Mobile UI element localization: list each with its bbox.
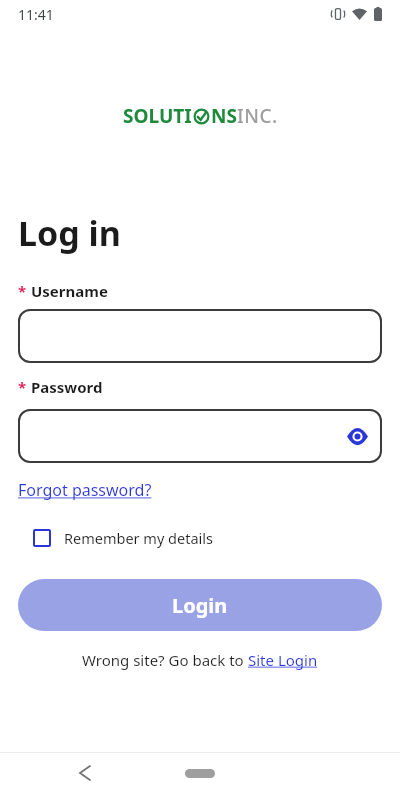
staticText: Username xyxy=(31,281,108,301)
staticText: INC. xyxy=(237,103,278,129)
staticText: Login xyxy=(172,592,228,619)
staticText: SOLUTI xyxy=(123,103,192,129)
staticText: NS xyxy=(211,103,237,129)
staticText: Log in xyxy=(18,210,121,256)
staticText: Remember my details xyxy=(64,528,213,548)
staticText: Password xyxy=(31,377,103,397)
button[interactable] xyxy=(185,769,215,778)
button[interactable] xyxy=(347,429,368,444)
staticText: Wrong site? Go back to xyxy=(82,650,248,670)
staticText: * xyxy=(18,377,31,397)
button[interactable]: Login xyxy=(18,579,382,631)
staticText: 11:41 xyxy=(18,5,54,24)
button[interactable] xyxy=(18,309,382,363)
button[interactable] xyxy=(18,409,382,463)
staticText: * xyxy=(18,281,31,301)
button[interactable]: Site Login xyxy=(248,650,318,670)
button[interactable]: Forgot password? xyxy=(18,479,152,501)
button[interactable] xyxy=(80,766,90,780)
button[interactable]: Remember my details xyxy=(33,528,213,548)
